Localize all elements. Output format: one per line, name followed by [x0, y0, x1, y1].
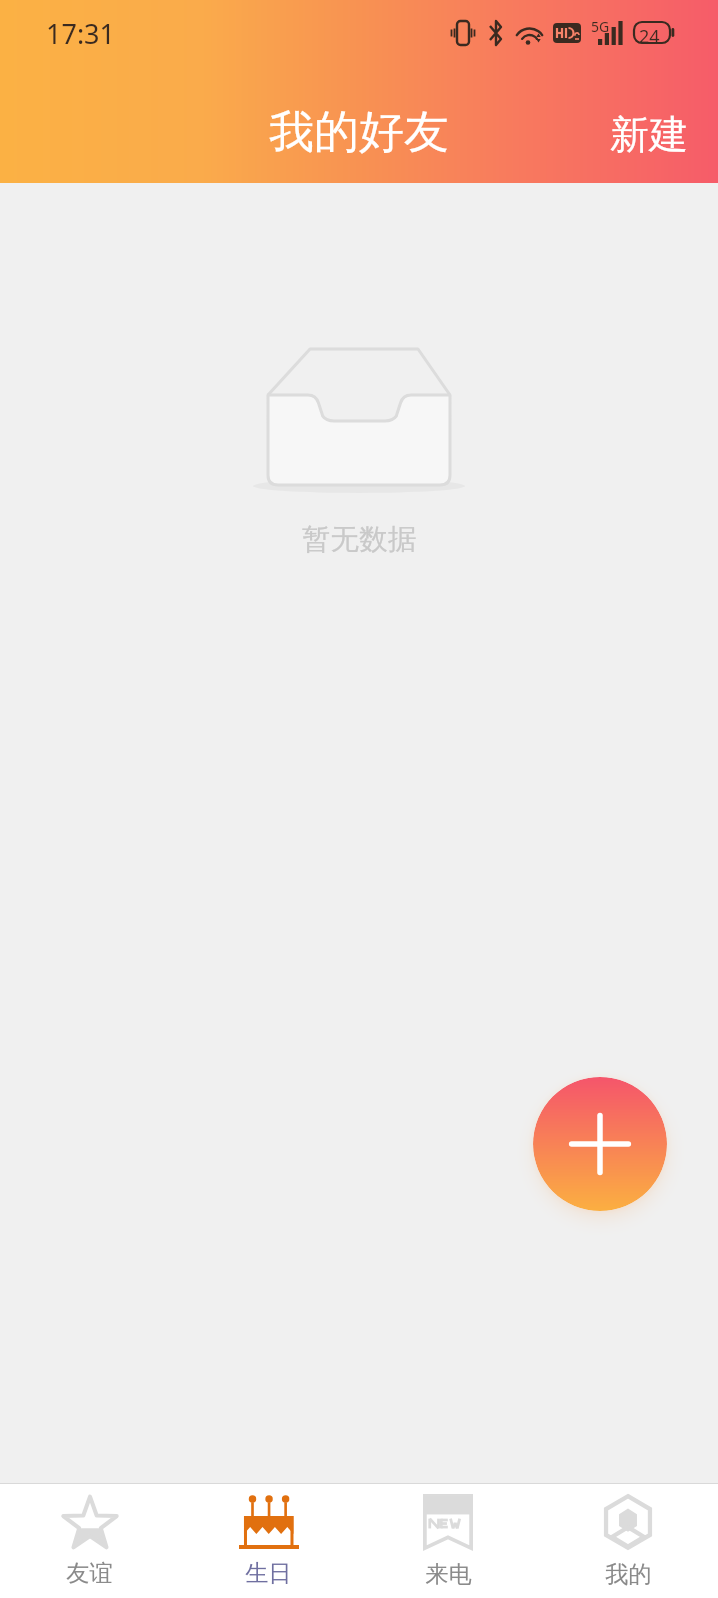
button[interactable]: 生日: [179, 1484, 358, 1598]
button[interactable]: 新建: [590, 98, 708, 171]
staticText: 暂无数据: [302, 521, 417, 557]
button[interactable]: 我的: [538, 1484, 718, 1598]
button[interactable]: 来电: [358, 1484, 538, 1598]
staticText: 友谊: [66, 1559, 113, 1588]
staticText: 17:31: [46, 15, 116, 52]
staticText: 生日: [245, 1559, 292, 1588]
staticText: 我的好友: [269, 104, 449, 161]
staticText: 5G: [591, 17, 610, 36]
staticText: 24: [639, 24, 660, 49]
button[interactable]: Add: [533, 1077, 667, 1211]
button[interactable]: 友谊: [0, 1484, 179, 1598]
staticText: 来电: [425, 1560, 472, 1589]
staticText: 新建: [610, 110, 688, 159]
staticText: 我的: [605, 1560, 652, 1589]
